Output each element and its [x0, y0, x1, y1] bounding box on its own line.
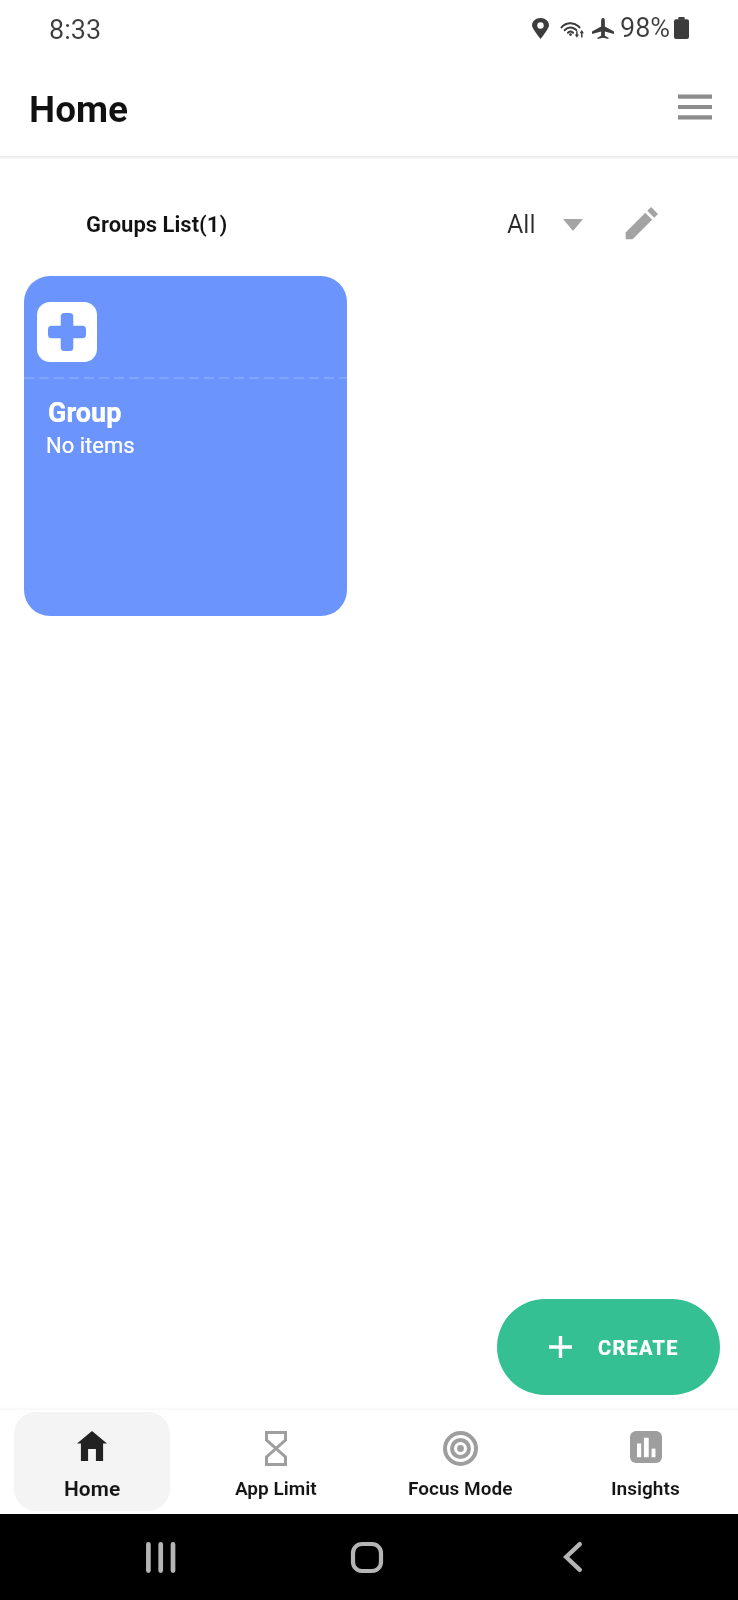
button[interactable]: App Limit [198, 1412, 354, 1511]
staticText: All [507, 210, 536, 239]
button[interactable]: CREATE [497, 1299, 720, 1395]
staticText: CREATE [598, 1336, 679, 1359]
staticText: No items [46, 433, 135, 459]
button[interactable]: Back [470, 1514, 676, 1600]
button[interactable]: All [499, 202, 589, 247]
button[interactable]: Home [14, 1412, 170, 1511]
staticText: 8:33 [49, 14, 102, 46]
button[interactable]: Focus Mode [382, 1412, 539, 1511]
staticText: Groups List(1) [86, 212, 228, 238]
staticText: App Limit [235, 1477, 317, 1499]
staticText: Insights [611, 1477, 680, 1499]
staticText: Home [64, 1477, 121, 1502]
staticText: Focus Mode [408, 1477, 513, 1499]
staticText: Home [29, 88, 129, 131]
button[interactable]: Menu [663, 75, 727, 139]
button[interactable]: Home [264, 1514, 470, 1600]
button[interactable]: Edit [619, 201, 663, 245]
staticText: 98% [620, 12, 671, 44]
button[interactable]: Insights [567, 1412, 724, 1511]
button[interactable]: Group [24, 276, 347, 616]
staticText: Group [48, 397, 122, 429]
button[interactable]: Recent apps [57, 1514, 264, 1600]
